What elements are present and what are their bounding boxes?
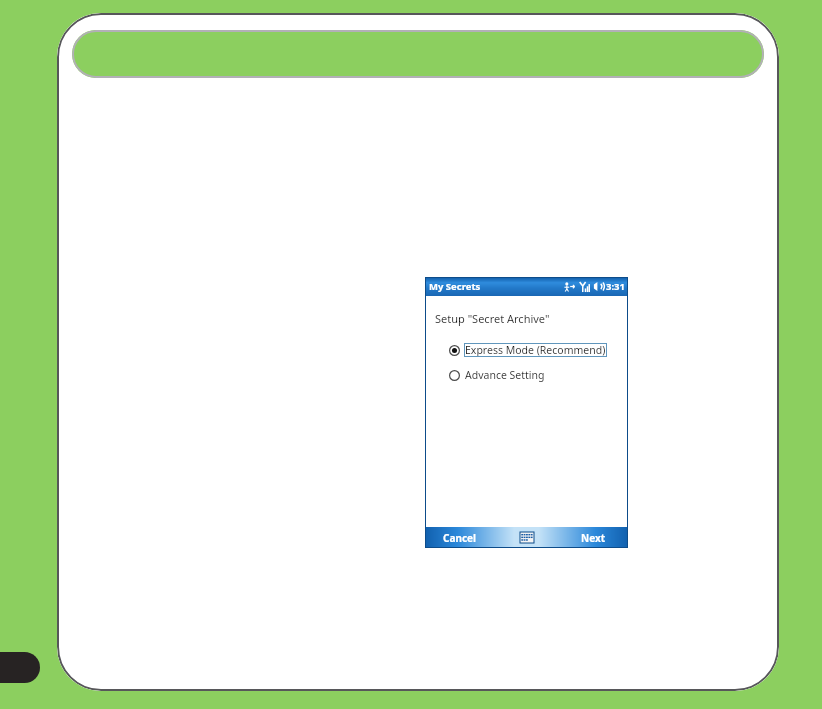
staticText: Setup "Secret Archive" [435, 311, 550, 326]
other: Connectivity [563, 281, 575, 293]
other: Signal strength [579, 281, 590, 293]
staticText: 3:31 [606, 280, 625, 293]
other: Volume [593, 281, 604, 292]
button[interactable]: Express Mode (Recommend) [449, 343, 607, 357]
button[interactable]: Advance Setting [449, 368, 546, 382]
staticText: Next [581, 531, 606, 545]
button[interactable]: Next [558, 527, 628, 548]
button[interactable]: Cancel [425, 527, 495, 548]
staticText: My Secrets [429, 280, 481, 293]
staticText: Advance Setting [465, 368, 545, 382]
button[interactable]: Show keyboard [513, 527, 541, 548]
staticText: Express Mode (Recommend) [465, 343, 606, 357]
staticText: Cancel [443, 531, 477, 545]
